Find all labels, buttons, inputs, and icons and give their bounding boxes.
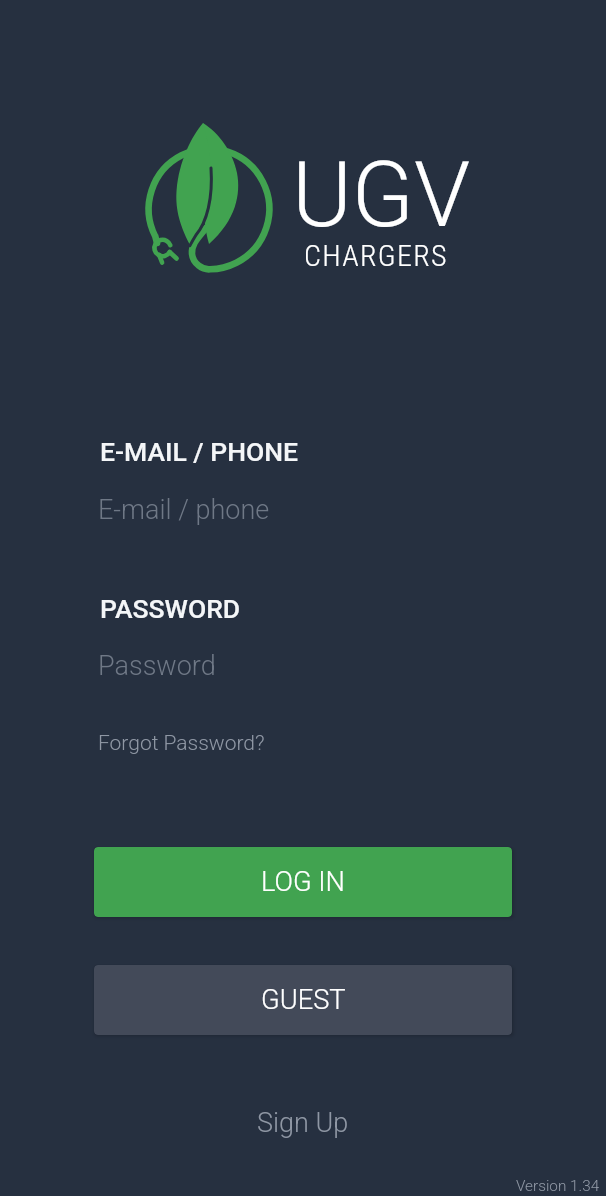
- staticText: Sign Up: [257, 1107, 349, 1139]
- staticText: E-MAIL / PHONE: [100, 436, 299, 467]
- staticText: Version 1.34: [516, 1177, 600, 1195]
- staticText: UGV: [292, 142, 471, 249]
- staticText: LOG IN: [261, 866, 345, 898]
- other: UGV Chargers logo: [145, 118, 281, 282]
- button[interactable]: E-mail / phone: [98, 486, 510, 530]
- staticText: PASSWORD: [100, 593, 241, 624]
- button[interactable]: GUEST: [94, 965, 512, 1035]
- button[interactable]: Password: [98, 642, 510, 686]
- staticText: Password: [98, 650, 216, 682]
- button[interactable]: Forgot Password?: [98, 731, 265, 756]
- button[interactable]: Sign Up: [257, 1107, 349, 1139]
- staticText: Forgot Password?: [98, 731, 265, 756]
- button[interactable]: LOG IN: [94, 847, 512, 917]
- staticText: CHARGERS: [304, 238, 448, 273]
- staticText: GUEST: [261, 984, 346, 1016]
- staticText: E-mail / phone: [98, 494, 270, 526]
